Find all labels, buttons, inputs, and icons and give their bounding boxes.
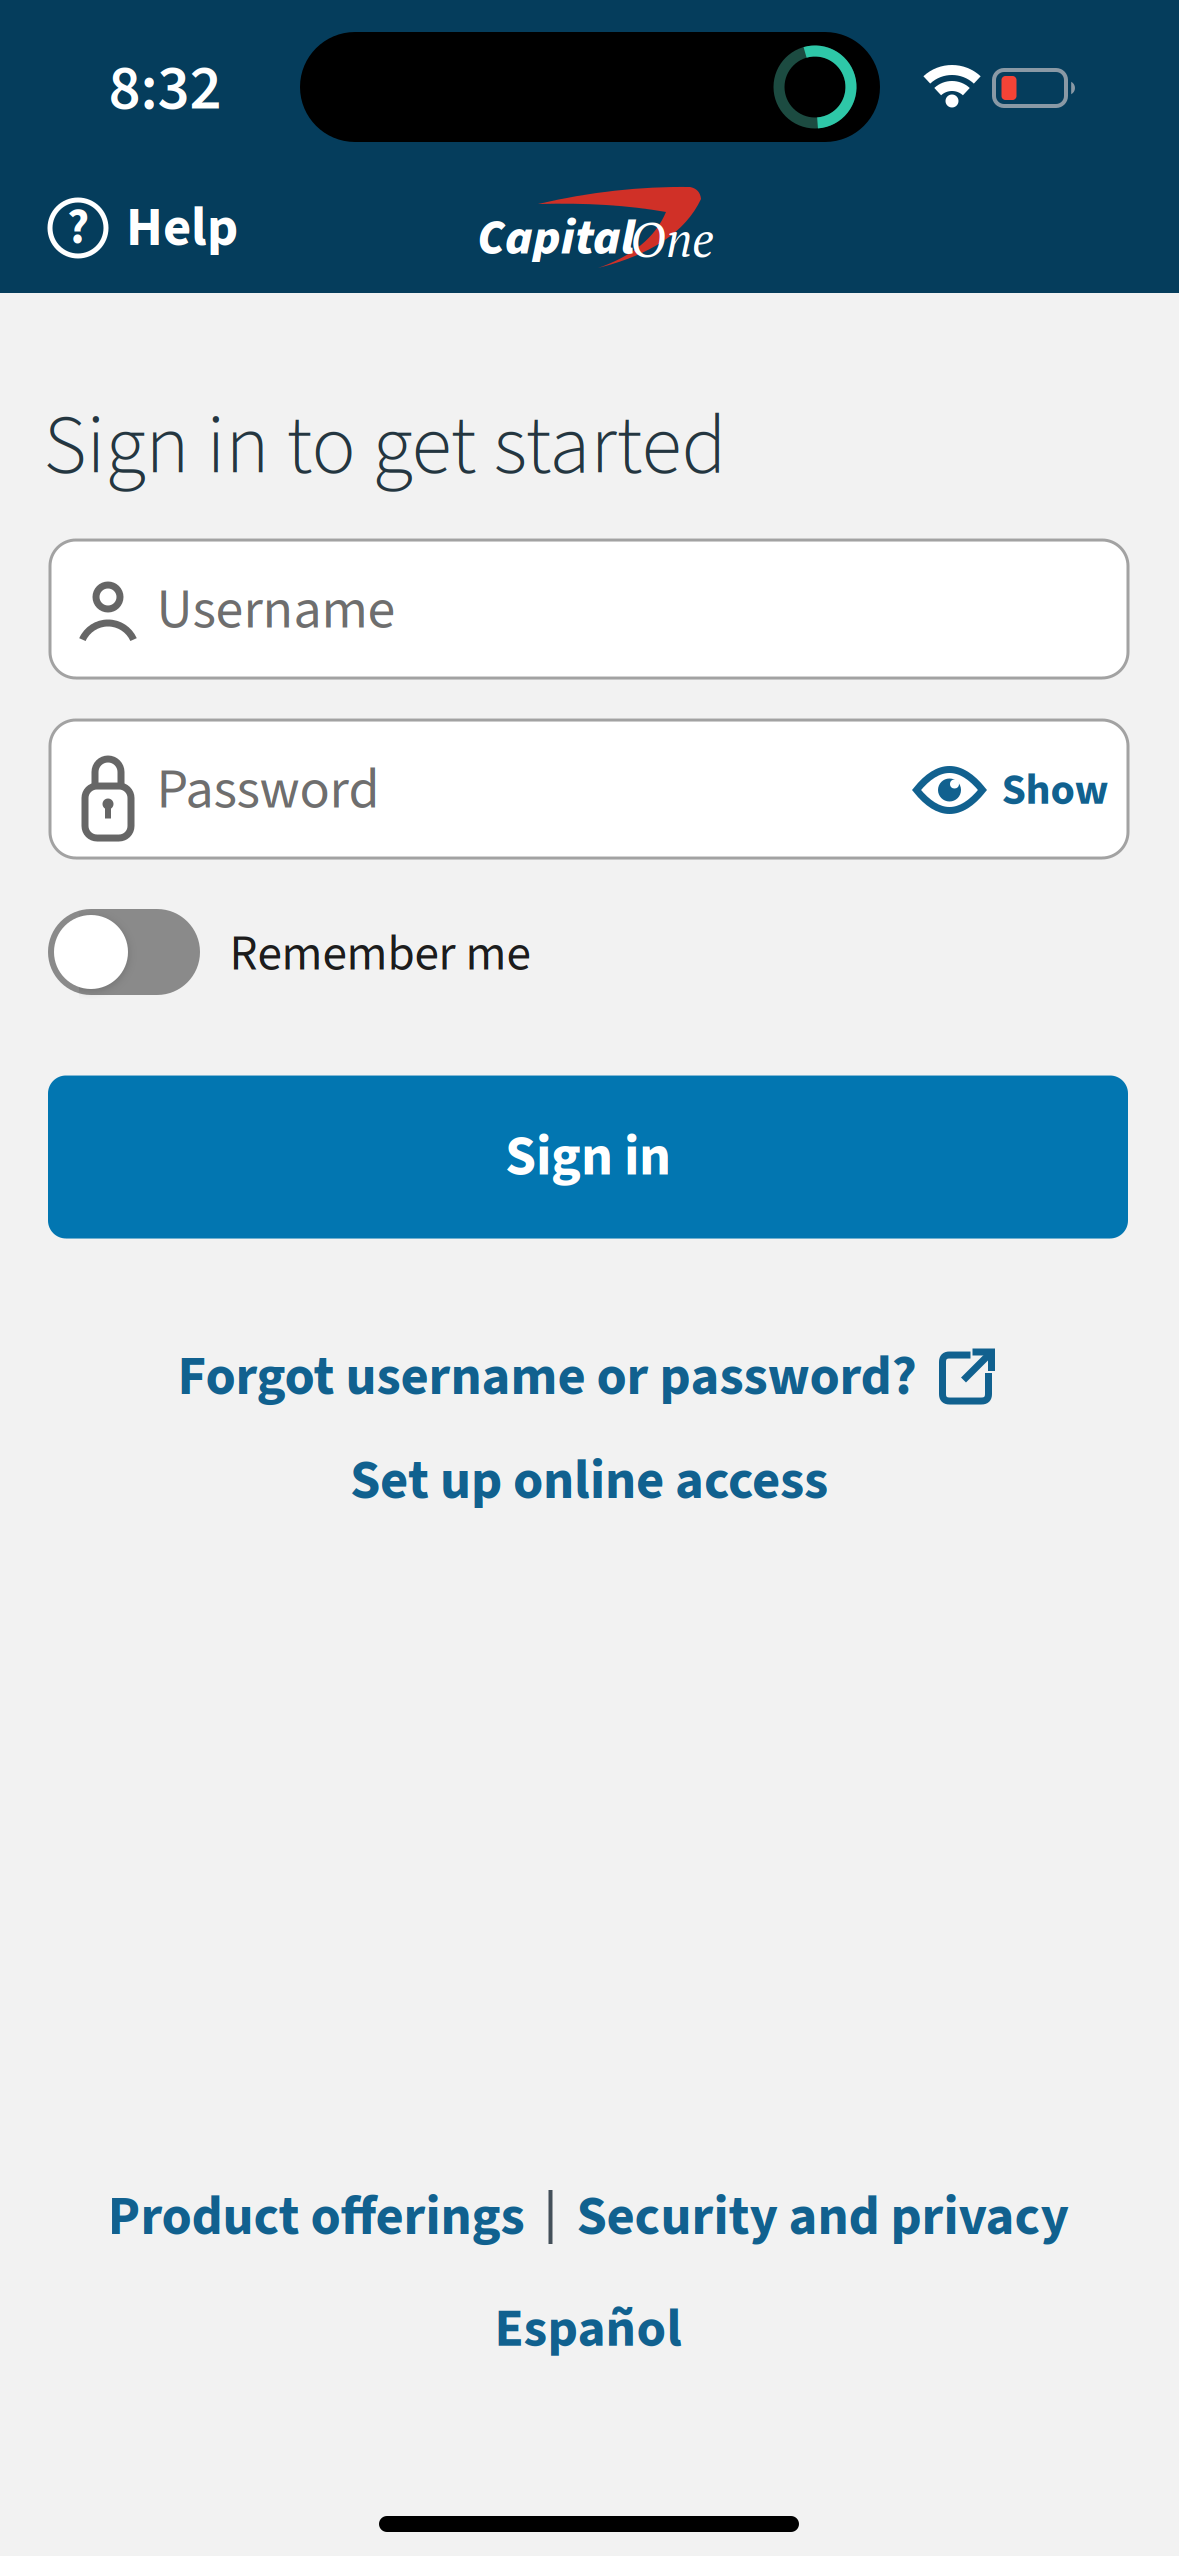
- button[interactable]: Sign in: [48, 1075, 1128, 1238]
- staticText: Remember me: [229, 919, 530, 989]
- button[interactable]: Security and privacy: [576, 2178, 1068, 2256]
- staticText: Capital: [477, 203, 635, 273]
- button[interactable]: Product offerings: [107, 2178, 524, 2256]
- staticText: 8:32: [108, 44, 221, 134]
- button[interactable]: [50, 720, 1128, 858]
- staticText: Password: [156, 750, 379, 830]
- staticText: Product offerings: [107, 2178, 524, 2256]
- button[interactable]: ?: [50, 189, 238, 267]
- button[interactable]: Forgot username or password?: [177, 1338, 994, 1416]
- staticText: Security and privacy: [576, 2178, 1068, 2256]
- staticText: ?: [67, 194, 89, 262]
- staticText: One: [630, 207, 714, 271]
- staticText: Set up online access: [350, 1442, 828, 1520]
- button[interactable]: Show: [915, 759, 1108, 821]
- staticText: Show: [1001, 759, 1108, 821]
- staticText: Español: [494, 2291, 681, 2367]
- button[interactable]: [50, 540, 1128, 678]
- staticText: Sign in to get started: [43, 388, 726, 506]
- staticText: Forgot username or password?: [177, 1338, 916, 1416]
- staticText: Username: [156, 570, 395, 650]
- button[interactable]: [48, 909, 200, 995]
- button[interactable]: Español: [494, 2291, 681, 2367]
- staticText: Help: [126, 189, 238, 267]
- staticText: Sign in: [505, 1117, 671, 1197]
- button[interactable]: Set up online access: [350, 1442, 828, 1520]
